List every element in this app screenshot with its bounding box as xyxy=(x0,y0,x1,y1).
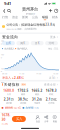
staticText: 09:30 xyxy=(2,72,7,75)
staticText: 1665.2 xyxy=(32,88,43,93)
button[interactable]: ! xyxy=(0,20,60,32)
staticText: 2.31万 xyxy=(4,97,14,101)
staticText: 实时 xyxy=(21,83,25,86)
staticText: 11:30 xyxy=(19,72,24,75)
staticText: 900 xyxy=(1,81,4,84)
staticText: 主力净流入 xyxy=(4,47,14,50)
staticText: 今开 xyxy=(7,93,11,96)
button[interactable]: 客服 xyxy=(50,115,59,123)
staticText: 1200 xyxy=(1,67,4,73)
staticText: 1680.0 xyxy=(3,88,14,93)
button[interactable]: 周K xyxy=(16,41,29,45)
staticText: ● 北向持股 7.8% xyxy=(22,106,39,109)
staticText: 1678.3 xyxy=(46,88,57,93)
staticText: 9:41 xyxy=(4,1,11,6)
button[interactable]: 月K xyxy=(31,41,44,45)
button[interactable]: Search xyxy=(7,9,11,13)
staticText: 1500 xyxy=(1,53,4,59)
staticText: 周K xyxy=(20,41,25,45)
staticText: 日K xyxy=(6,41,11,45)
button[interactable]: 行情 xyxy=(0,15,10,20)
button[interactable]: 日K xyxy=(2,41,15,45)
staticText: 总市值 xyxy=(48,102,54,104)
staticText: 近5日 › xyxy=(49,76,58,79)
staticText: 新闻 xyxy=(22,15,28,19)
staticText: 行情 xyxy=(2,15,8,19)
staticText: 14:00 xyxy=(36,72,41,75)
staticText: 公司公告：拟派现金红利每股23.8元 xyxy=(6,23,55,27)
button[interactable]: 财务 xyxy=(50,15,60,20)
staticText: 最高 xyxy=(21,93,25,96)
staticText: 分时 xyxy=(48,41,54,45)
staticText: 研报 xyxy=(42,15,48,19)
button[interactable]: 近5日 › xyxy=(49,76,58,79)
staticText: 关键指标 xyxy=(4,82,20,87)
staticText: 买入 xyxy=(16,117,22,121)
staticText: 昨收 xyxy=(49,93,53,96)
button[interactable]: 查看全部 › xyxy=(44,83,58,86)
staticText: 客服 xyxy=(53,120,57,123)
button[interactable]: 公告 xyxy=(30,15,40,20)
staticText: 财务 xyxy=(52,15,58,19)
staticText: 散户净流入 xyxy=(17,47,27,50)
staticText: 自选 xyxy=(36,120,40,123)
staticText: 贵州茅台 xyxy=(22,7,38,12)
button[interactable]: Back xyxy=(2,9,7,13)
staticText: 分享 xyxy=(44,120,48,123)
staticText: 净流入 +2.48亿 xyxy=(2,76,24,80)
staticText: 2.1万亿 xyxy=(46,97,57,101)
staticText: 最低 xyxy=(35,93,39,96)
button[interactable]: More info xyxy=(54,9,58,13)
button[interactable]: 分时 xyxy=(45,41,58,45)
staticText: ● 融资余额 182.4亿 xyxy=(2,106,21,109)
button[interactable]: 更多 › xyxy=(50,35,58,39)
staticText: SH600519 xyxy=(25,12,34,15)
staticText: 2024-03-28 披露 · 点击查看详情 xyxy=(6,27,36,30)
staticText: 月K xyxy=(35,41,40,45)
button[interactable]: Add to watchlist xyxy=(49,9,52,13)
staticText: 更多 › xyxy=(50,35,58,39)
staticText: 15:00 xyxy=(53,72,58,75)
staticText: 成交量 xyxy=(6,102,12,104)
staticText: 查看全部 › xyxy=(44,83,58,86)
staticText: 1800 xyxy=(1,39,4,45)
staticText: 公告 xyxy=(32,15,38,19)
staticText: 31.2倍 xyxy=(32,97,42,101)
button[interactable]: 买入 xyxy=(12,116,26,122)
staticText: 成交额 xyxy=(20,102,26,104)
staticText: 38.9亿 xyxy=(18,97,28,101)
staticText: ! xyxy=(3,25,4,28)
staticText: 1702.5 xyxy=(17,88,28,93)
button[interactable]: 新闻 xyxy=(20,15,30,20)
staticText: 资金流向 xyxy=(2,34,18,39)
button[interactable]: 分享 xyxy=(42,115,50,123)
button[interactable]: 研报 xyxy=(40,15,50,20)
staticText: 1678.30 xyxy=(1,113,10,122)
staticText: +1.24% xyxy=(1,122,8,125)
staticText: 市盈率 xyxy=(34,102,40,104)
staticText: 资金 xyxy=(12,15,18,19)
staticText: 单位：万元 xyxy=(48,47,58,50)
button[interactable]: 自选 xyxy=(33,115,42,123)
button[interactable]: 资金 xyxy=(10,15,20,20)
